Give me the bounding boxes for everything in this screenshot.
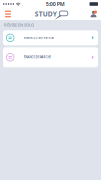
button[interactable]: FINANCE DE MARCHÉ [3,47,98,67]
button[interactable]: FINANCE D'ENTREPRISE [3,30,98,45]
button[interactable]: Profile [88,8,99,20]
button[interactable]: Menu [2,8,14,20]
staticText: STUDY [35,10,57,18]
staticText: RÉVISE EN SOLO [4,22,34,28]
staticText: FINANCE DE MARCHÉ [24,55,51,59]
staticText: FINANCE D'ENTREPRISE [24,36,54,39]
staticText: 5:00 PM [46,0,65,8]
